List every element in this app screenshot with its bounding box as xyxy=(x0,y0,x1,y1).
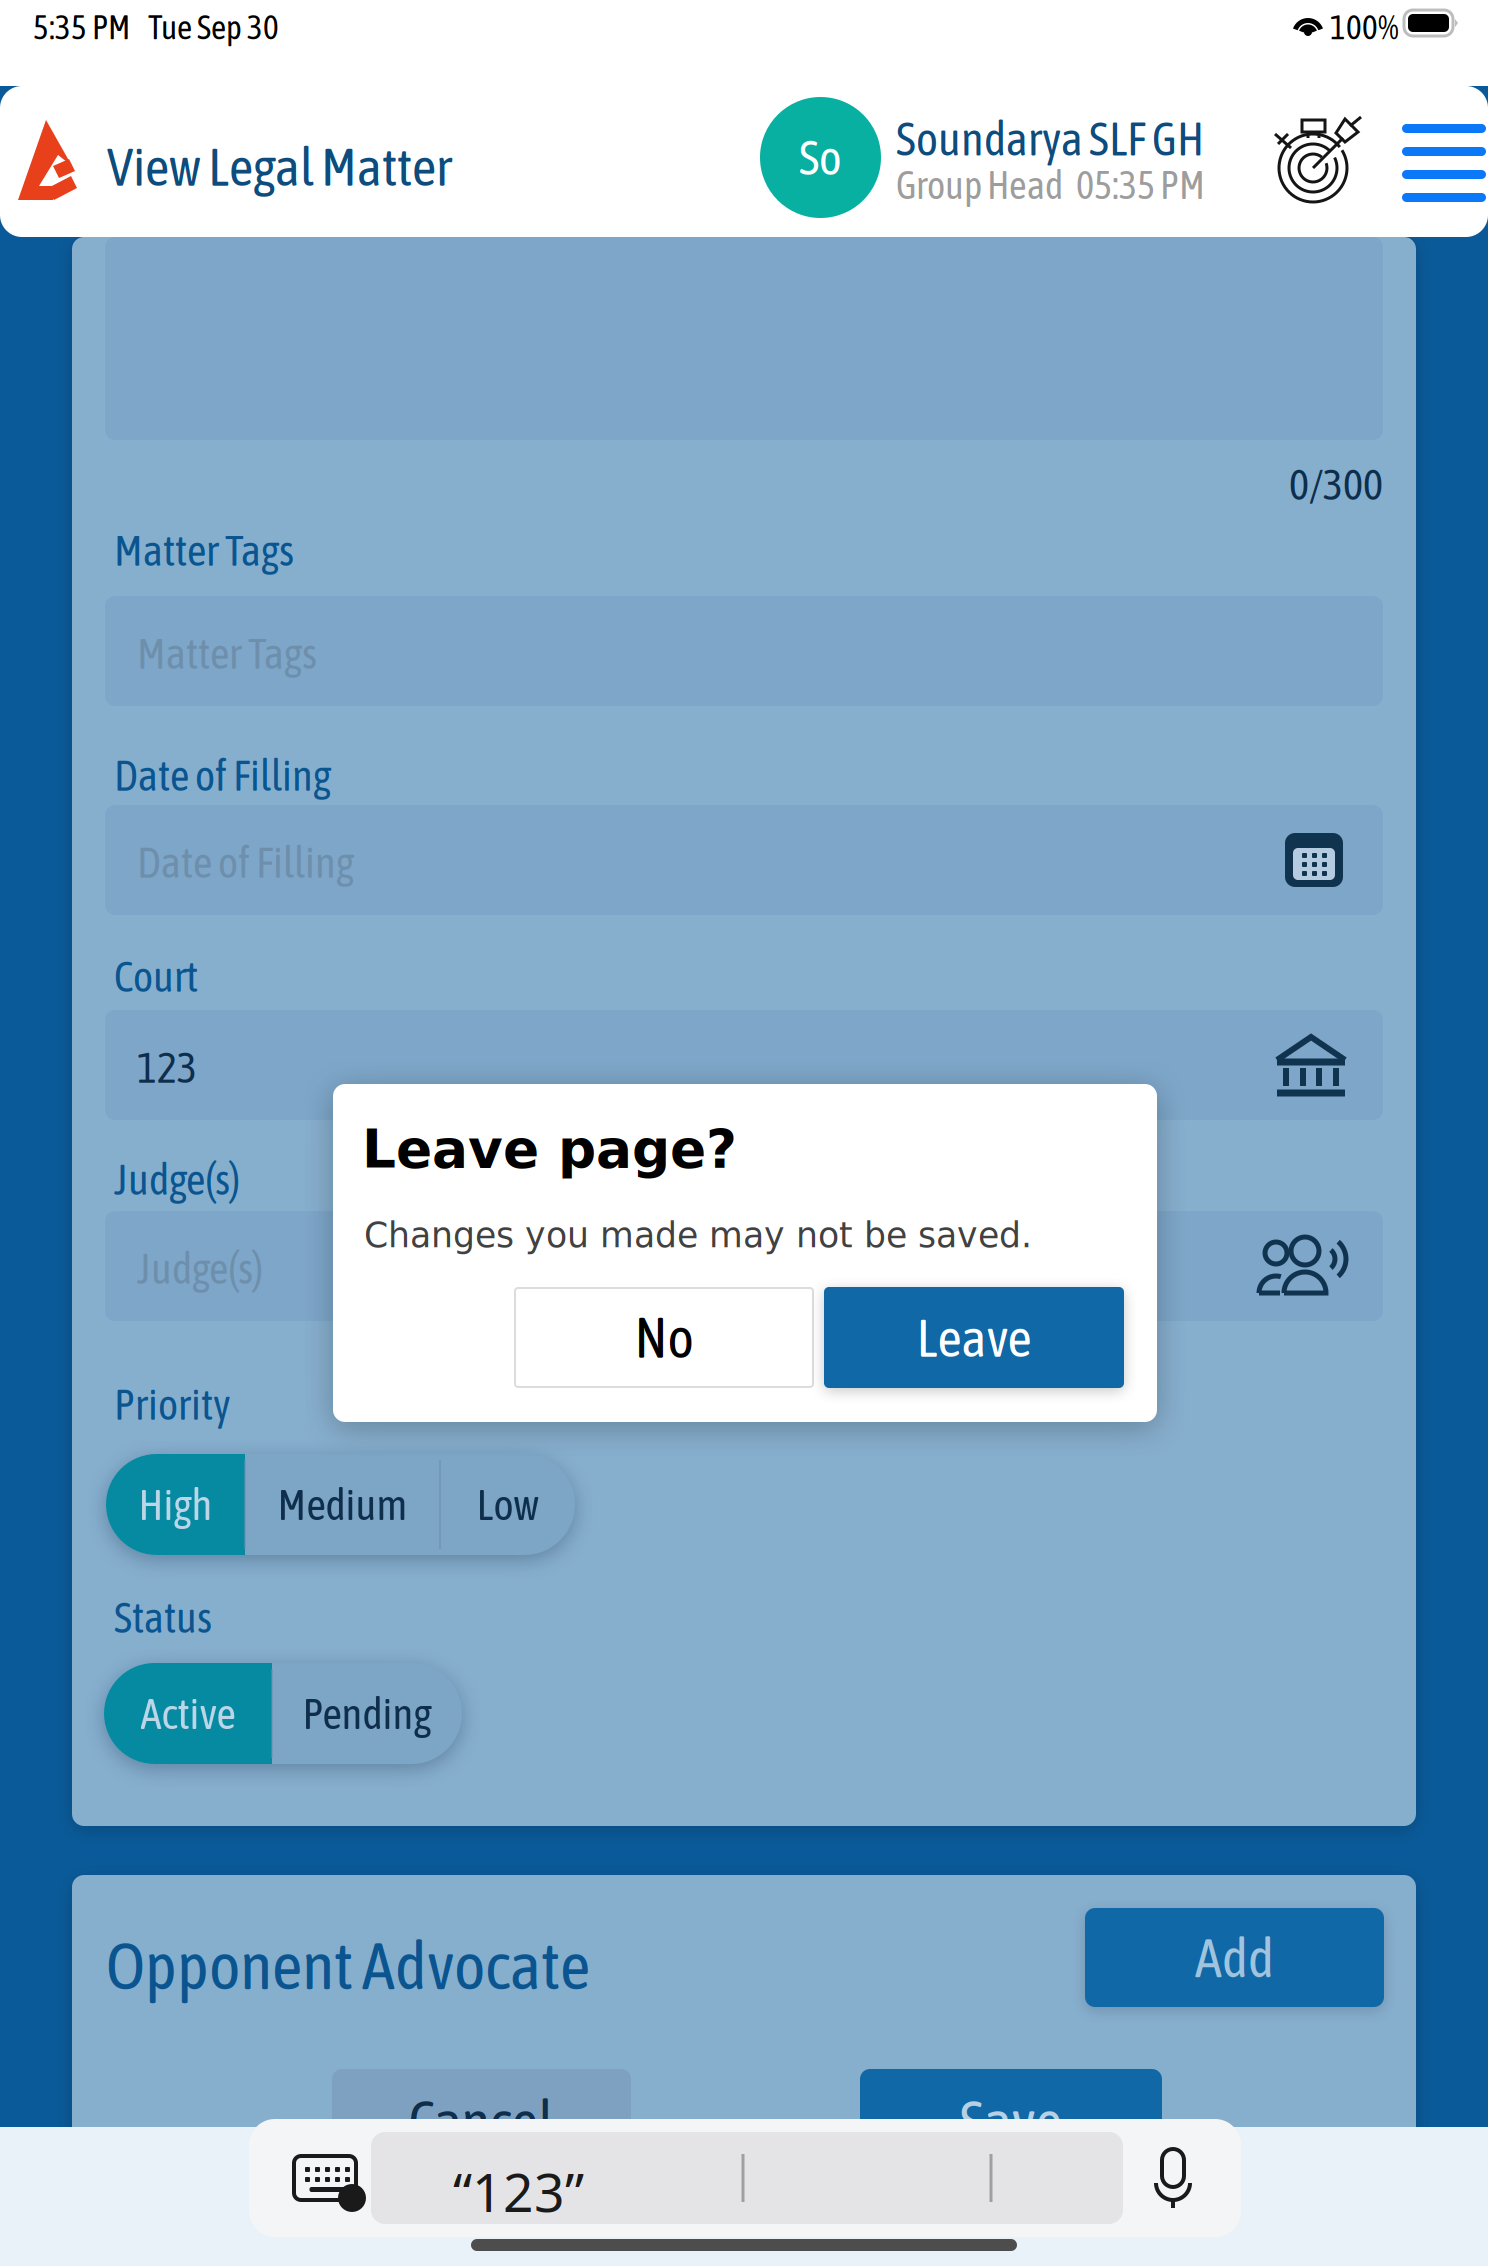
button[interactable]: So xyxy=(760,97,881,218)
staticText: Active xyxy=(140,1689,235,1738)
button[interactable]: Low xyxy=(440,1454,575,1555)
staticText: Date of Filling xyxy=(137,838,354,887)
staticText: Soundarya SLF GH xyxy=(896,112,1204,165)
button[interactable]: Dictate xyxy=(1151,2147,1195,2209)
button[interactable]: Active xyxy=(104,1663,272,1764)
staticText: No xyxy=(634,1305,693,1370)
staticText: Matter Tags xyxy=(137,629,317,678)
button[interactable]: 123 xyxy=(105,1010,1383,1120)
button[interactable]: Add xyxy=(1085,1908,1384,2007)
staticText: Add xyxy=(1195,1926,1274,1989)
staticText: 100% xyxy=(1330,8,1399,46)
button[interactable]: High xyxy=(106,1454,245,1555)
staticText: Date of Filling xyxy=(114,751,331,800)
button[interactable]: Leave xyxy=(824,1287,1124,1388)
button[interactable]: No xyxy=(515,1288,813,1387)
staticText: Court xyxy=(114,952,198,1001)
staticText: Judge(s) xyxy=(114,1155,240,1204)
staticText: 123 xyxy=(137,1043,197,1092)
staticText: 5:35 PM xyxy=(33,8,130,46)
button[interactable]: Medium xyxy=(245,1454,440,1555)
staticText: Judge(s) xyxy=(137,1244,263,1293)
button[interactable]: Menu xyxy=(1402,125,1486,201)
staticText: Opponent Advocate xyxy=(106,1927,590,2003)
staticText: Cancel xyxy=(408,2087,554,2155)
button[interactable]: Cancel xyxy=(332,2069,631,2173)
staticText: Low xyxy=(476,1480,538,1529)
staticText: View Legal Matter xyxy=(107,136,452,197)
button[interactable]: Matter Tags xyxy=(105,596,1383,706)
staticText: So xyxy=(799,130,842,185)
staticText: Priority xyxy=(114,1380,231,1429)
button[interactable]: Judge(s) xyxy=(105,1211,1383,1321)
button[interactable]: Save xyxy=(860,2069,1162,2173)
button[interactable]: Pending xyxy=(272,1663,462,1764)
staticText: Matter Tags xyxy=(114,526,294,575)
staticText: Leave page? xyxy=(362,1118,737,1180)
staticText: “123” xyxy=(453,2156,584,2227)
staticText: 05:35 PM xyxy=(1076,163,1205,207)
staticText: Changes you made may not be saved. xyxy=(364,1215,1032,1255)
staticText: Save xyxy=(959,2087,1062,2155)
staticText: Pending xyxy=(302,1689,431,1738)
staticText: Status xyxy=(114,1593,212,1642)
staticText: High xyxy=(138,1480,212,1529)
staticText: Medium xyxy=(277,1480,407,1529)
button[interactable]: Goals xyxy=(1272,114,1364,206)
staticText: Leave xyxy=(916,1307,1031,1368)
staticText: Tue Sep 30 xyxy=(148,8,279,46)
staticText: Group Head xyxy=(896,163,1063,207)
button[interactable]: Switch keyboard xyxy=(287,2149,363,2207)
staticText: 0/300 xyxy=(1289,460,1383,509)
button[interactable]: Date of Filling xyxy=(105,805,1383,915)
